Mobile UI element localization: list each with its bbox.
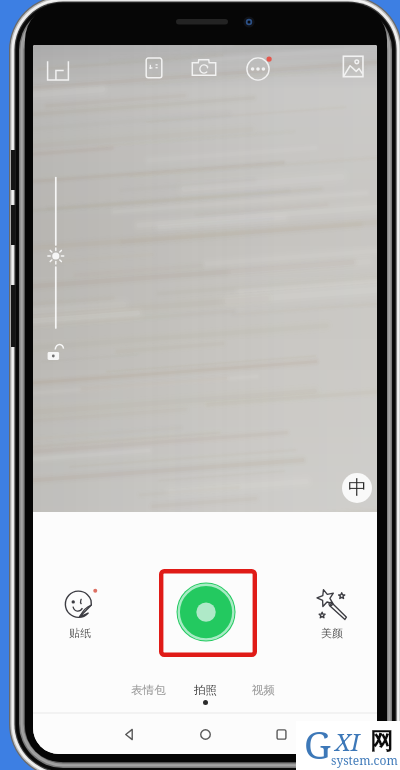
button[interactable]: 美颜	[306, 586, 358, 640]
button[interactable]: More options	[241, 52, 275, 86]
button[interactable]: Home	[187, 716, 223, 752]
staticText: XI	[335, 725, 360, 758]
button[interactable]: Flash off	[41, 52, 75, 86]
button[interactable]: Gallery	[337, 51, 371, 85]
button[interactable]: Shutter	[159, 569, 257, 657]
button[interactable]: Exposure	[40, 170, 74, 370]
button[interactable]: 拍照	[181, 683, 229, 705]
staticText: 中	[348, 476, 367, 500]
staticText: 视频	[252, 683, 275, 697]
staticText: 网	[370, 727, 393, 753]
staticText: 贴纸	[69, 626, 91, 640]
button[interactable]: 贴纸	[54, 586, 106, 640]
staticText: G	[304, 718, 332, 770]
button[interactable]: Back	[111, 716, 147, 752]
staticText: 拍照	[194, 683, 217, 697]
button[interactable]: Switch camera	[187, 52, 221, 86]
button[interactable]: 视频	[239, 683, 287, 700]
button[interactable]: Aspect ratio 4:3	[137, 52, 171, 86]
button[interactable]: Chinese mode	[342, 473, 372, 503]
button[interactable]: Recents	[263, 716, 299, 752]
staticText: 表情包	[131, 683, 166, 697]
staticText: 美颜	[321, 626, 343, 640]
staticText: system.com	[331, 752, 398, 768]
button[interactable]: 表情包	[124, 683, 172, 700]
